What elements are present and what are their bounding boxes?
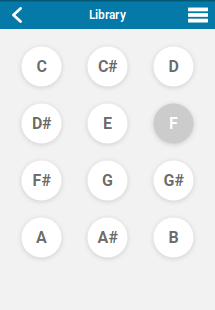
button[interactable]: Back — [0, 2, 34, 28]
button[interactable]: Menu — [181, 2, 215, 28]
button[interactable]: F — [146, 97, 201, 149]
button[interactable]: F# — [14, 154, 69, 206]
button[interactable]: G# — [146, 154, 201, 206]
staticText: F# — [32, 171, 50, 190]
button[interactable]: A — [14, 211, 69, 263]
staticText: C# — [98, 57, 117, 76]
button[interactable]: C# — [80, 40, 135, 92]
staticText: G# — [163, 171, 183, 190]
button[interactable]: G — [80, 154, 135, 206]
staticText: A# — [97, 228, 117, 247]
staticText: G — [102, 171, 113, 190]
staticText: E — [103, 114, 112, 133]
button[interactable]: D# — [14, 97, 69, 149]
button[interactable]: E — [80, 97, 135, 149]
button[interactable]: D — [146, 40, 201, 92]
button[interactable]: B — [146, 211, 201, 263]
staticText: C — [36, 57, 46, 76]
staticText: D — [168, 57, 178, 76]
staticText: Library — [89, 8, 126, 22]
button[interactable]: A# — [80, 211, 135, 263]
staticText: B — [168, 228, 178, 247]
button[interactable]: C — [14, 40, 69, 92]
staticText: D# — [32, 114, 51, 133]
staticText: F — [169, 114, 178, 133]
staticText: A — [36, 228, 47, 247]
